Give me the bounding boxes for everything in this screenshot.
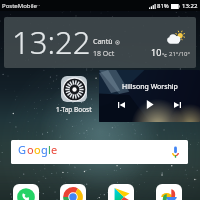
staticText: 81%	[157, 2, 169, 10]
button[interactable]: Next track	[171, 98, 184, 111]
button[interactable]: Play	[142, 97, 157, 112]
button[interactable]: G	[11, 140, 188, 164]
staticText: o	[27, 142, 34, 157]
staticText: 13:22	[12, 21, 91, 63]
staticText: g	[41, 142, 48, 157]
button[interactable]: Chrome	[60, 184, 86, 200]
staticText: o	[34, 142, 41, 157]
staticText: °c	[162, 51, 167, 58]
staticText: 1-Tap Boost	[56, 105, 92, 114]
staticText: e	[51, 142, 58, 157]
staticText: l	[48, 142, 51, 157]
button[interactable]: 1-Tap Boost	[54, 76, 94, 114]
button[interactable]: Photos	[156, 184, 182, 200]
staticText: 13:22	[182, 2, 198, 10]
staticText: 10	[151, 46, 162, 58]
button[interactable]: Hillsong Worship	[99, 70, 200, 122]
staticText: ···	[36, 2, 41, 9]
staticText: Hillsong Worship	[122, 82, 178, 92]
button[interactable]: Play Store	[108, 184, 134, 200]
staticText: G	[18, 142, 27, 157]
staticText: 21°/10°	[169, 50, 191, 58]
other: Voice search	[172, 146, 179, 158]
staticText: 18 Oct	[93, 49, 115, 59]
button[interactable]: Previous track	[115, 98, 128, 111]
button[interactable]: 13:22	[4, 17, 196, 68]
staticText: PosteMobile	[2, 2, 37, 10]
button[interactable]: WhatsApp	[13, 184, 39, 200]
staticText: Cantù	[93, 37, 113, 47]
